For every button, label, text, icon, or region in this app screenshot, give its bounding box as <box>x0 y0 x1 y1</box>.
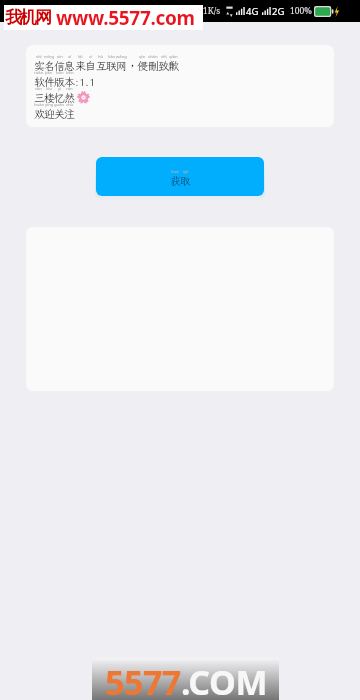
staticText: huò <box>171 169 179 175</box>
staticText: rán <box>66 86 73 92</box>
staticText: 1 <box>79 75 86 89</box>
staticText: míng <box>44 54 55 60</box>
staticText: 2G <box>272 5 285 18</box>
staticText: 软 <box>34 75 45 89</box>
staticText: 歉 <box>168 59 179 73</box>
staticText: guān <box>54 102 65 108</box>
button[interactable]: 获 <box>96 157 264 196</box>
staticText: hù <box>98 54 104 60</box>
staticText: 版 <box>54 75 65 89</box>
staticText: 5577 <box>105 659 181 700</box>
staticText: 网 <box>116 59 127 73</box>
staticText: www.5577.com <box>56 5 195 30</box>
staticText: qiàn <box>169 54 178 60</box>
staticText: 侵 <box>137 59 148 73</box>
staticText: 欢 <box>34 107 45 121</box>
staticText: : <box>75 75 79 89</box>
staticText: 致 <box>158 59 169 73</box>
staticText: huān <box>34 102 45 108</box>
staticText: 我机网 <box>6 7 51 28</box>
staticText: shí <box>36 54 42 60</box>
staticText: jiàn <box>45 70 53 76</box>
staticText: 1K/s <box>203 5 220 17</box>
button[interactable]: 实 <box>26 45 334 127</box>
staticText: xī <box>68 54 72 60</box>
staticText: zhì <box>161 54 167 60</box>
staticText: xìn <box>57 54 63 60</box>
staticText: 楼 <box>44 91 55 105</box>
staticText: 件 <box>44 75 55 89</box>
staticText: 联 <box>106 59 117 73</box>
staticText: zì <box>89 54 93 60</box>
staticText: 息 <box>64 59 75 73</box>
staticText: sān <box>35 86 42 92</box>
staticText: 取 <box>180 174 191 188</box>
staticText: 自 <box>85 59 96 73</box>
staticText: yíng <box>45 102 54 108</box>
staticText: 关 <box>54 107 65 121</box>
staticText: 互 <box>96 59 107 73</box>
staticText: ， <box>127 59 138 73</box>
staticText: lái <box>78 54 83 60</box>
staticText: 然 <box>64 91 75 105</box>
staticText: 删 <box>148 59 159 73</box>
staticText: zhù <box>66 102 74 108</box>
staticText: 100% <box>290 5 312 17</box>
staticText: 信 <box>54 59 65 73</box>
staticText: 本 <box>64 75 75 89</box>
staticText: 1 <box>89 75 96 89</box>
staticText: 三 <box>34 91 45 105</box>
staticText: ruǎn <box>34 70 44 76</box>
staticText: shān <box>148 54 158 60</box>
staticText: 获 <box>170 174 181 188</box>
staticText: wǎng <box>116 54 127 60</box>
staticText: bǎn <box>56 70 64 76</box>
staticText: 4G <box>246 5 259 18</box>
staticText: yì <box>58 86 62 92</box>
staticText: běn <box>66 70 74 76</box>
staticText: 迎 <box>44 107 55 121</box>
staticText: lián <box>108 54 116 60</box>
staticText: lóu <box>46 86 53 92</box>
staticText: .COM <box>181 659 267 700</box>
staticText: qīn <box>139 54 146 60</box>
staticText: 实 <box>34 59 45 73</box>
staticText: 忆 <box>54 91 65 105</box>
staticText: qǔ <box>183 169 189 175</box>
staticText: 来 <box>75 59 86 73</box>
staticText: . <box>85 75 89 89</box>
staticText: 名 <box>44 59 55 73</box>
staticText: 注 <box>64 107 75 121</box>
